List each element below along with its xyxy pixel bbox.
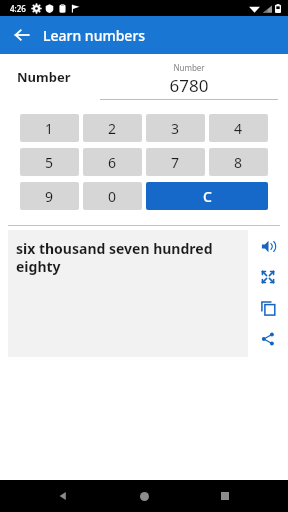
staticText: 6 bbox=[108, 153, 117, 172]
button[interactable]: Recent apps bbox=[212, 483, 238, 509]
staticText: 4:26 bbox=[10, 3, 26, 14]
button[interactable]: Speak bbox=[255, 233, 281, 259]
staticText: 8 bbox=[234, 153, 243, 172]
staticText: Number bbox=[17, 68, 71, 86]
staticText: 2 bbox=[108, 119, 117, 138]
staticText: 7 bbox=[171, 153, 180, 172]
button[interactable]: Number bbox=[100, 62, 278, 100]
button[interactable]: 4 bbox=[209, 114, 268, 142]
button[interactable]: 0 bbox=[83, 182, 142, 210]
staticText: Learn numbers bbox=[43, 26, 146, 45]
button[interactable]: Back bbox=[8, 21, 36, 49]
button[interactable]: 5 bbox=[20, 148, 79, 176]
button[interactable]: 3 bbox=[146, 114, 205, 142]
staticText: Number bbox=[100, 62, 278, 73]
button[interactable]: Copy bbox=[255, 295, 281, 321]
staticText: 3 bbox=[171, 119, 180, 138]
staticText: 4 bbox=[234, 119, 243, 138]
button[interactable]: 6 bbox=[83, 148, 142, 176]
staticText: 9 bbox=[45, 187, 54, 206]
button[interactable]: 8 bbox=[209, 148, 268, 176]
button[interactable]: 7 bbox=[146, 148, 205, 176]
staticText: C bbox=[203, 187, 212, 206]
staticText: six thousand seven hundred eighty bbox=[16, 239, 242, 276]
button[interactable]: Expand bbox=[255, 264, 281, 290]
staticText: 1 bbox=[45, 119, 54, 138]
staticText: 0 bbox=[108, 187, 117, 206]
button[interactable]: 1 bbox=[20, 114, 79, 142]
button[interactable]: Share bbox=[255, 326, 281, 352]
staticText: 6780 bbox=[100, 74, 278, 97]
button[interactable]: Home bbox=[131, 483, 157, 509]
button[interactable]: six thousand seven hundred eighty bbox=[8, 230, 248, 357]
button[interactable]: 2 bbox=[83, 114, 142, 142]
button[interactable]: Back bbox=[50, 483, 76, 509]
button[interactable]: 9 bbox=[20, 182, 79, 210]
button[interactable]: C bbox=[146, 182, 268, 210]
staticText: 5 bbox=[45, 153, 54, 172]
